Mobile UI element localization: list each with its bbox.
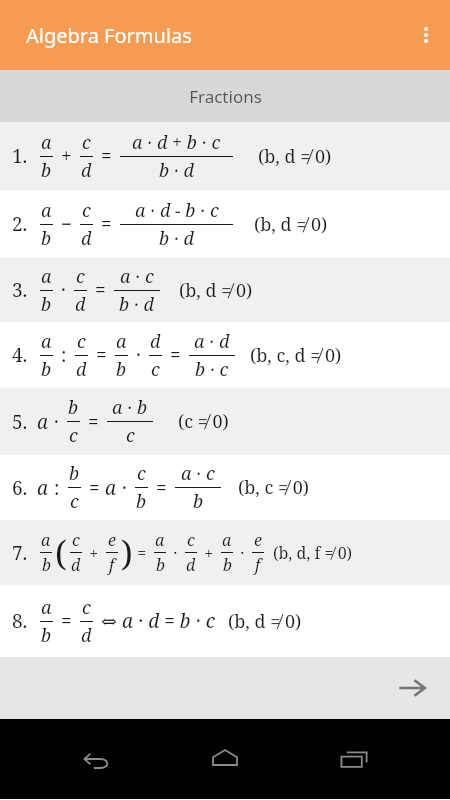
staticText: d — [81, 623, 92, 648]
staticText: = — [151, 475, 172, 501]
staticText: = — [83, 409, 104, 435]
staticText: a — [41, 264, 52, 289]
staticText: a · d − b · c — [135, 198, 219, 223]
staticText: b · c — [195, 357, 229, 382]
staticText: 2. — [12, 211, 28, 237]
staticText: Fractions — [189, 85, 262, 108]
staticText: · — [49, 409, 64, 435]
staticText: a — [41, 130, 52, 155]
staticText: b — [69, 461, 80, 486]
staticText: a · b — [112, 395, 148, 420]
staticText: c — [137, 461, 146, 486]
staticText: a · d + b · c — [132, 130, 221, 155]
staticText: : — [56, 342, 72, 368]
button[interactable]: 4. — [0, 322, 450, 388]
staticText: (b, d ≠ 0) — [228, 609, 302, 634]
staticText: c — [72, 529, 80, 551]
staticText: a — [37, 409, 49, 435]
staticText: − — [56, 211, 77, 237]
staticText: : — [49, 475, 65, 501]
button[interactable]: 3. — [0, 258, 450, 322]
staticText: 6. — [12, 475, 28, 501]
staticText: b — [41, 226, 52, 251]
staticText: b — [41, 292, 52, 317]
staticText: c — [187, 529, 195, 551]
staticText: · — [131, 342, 146, 368]
staticText: c — [70, 489, 79, 514]
button[interactable]: Back — [65, 727, 129, 791]
staticText: = — [133, 542, 151, 564]
staticText: b — [42, 554, 51, 576]
button[interactable]: 6. — [0, 455, 450, 520]
staticText: · — [117, 475, 132, 501]
button[interactable]: 2. — [0, 190, 450, 258]
button[interactable]: Next — [384, 660, 440, 716]
staticText: e — [254, 529, 262, 551]
staticText: d — [71, 554, 81, 576]
staticText: d — [81, 158, 92, 183]
staticText: + — [85, 542, 103, 564]
staticText: a — [41, 329, 52, 354]
staticText: a — [37, 475, 49, 501]
staticText: (b, d ≠ 0) — [254, 212, 328, 237]
staticText: 3. — [12, 277, 28, 303]
staticText: b — [41, 158, 52, 183]
staticText: (b, d ≠ 0) — [258, 144, 332, 169]
button[interactable]: 8. — [0, 585, 450, 657]
button[interactable]: 5. — [0, 388, 450, 455]
staticText: d — [186, 554, 196, 576]
staticText: c — [76, 264, 85, 289]
staticText: ⇔ — [96, 608, 122, 634]
staticText: ( — [55, 530, 67, 576]
staticText: c — [151, 357, 160, 382]
staticText: a · c — [181, 461, 215, 486]
staticText: (b, d, f ≠ 0) — [273, 542, 353, 564]
button[interactable]: 1. — [0, 122, 450, 190]
staticText: a — [116, 329, 127, 354]
staticText: c — [69, 423, 78, 448]
staticText: b · d — [159, 226, 195, 251]
staticText: c — [82, 130, 91, 155]
staticText: (c ≠ 0) — [178, 409, 229, 434]
staticText: = — [84, 475, 105, 501]
staticText: = — [96, 211, 117, 237]
staticText: a — [41, 595, 52, 620]
staticText: b — [156, 554, 165, 576]
staticText: Algebra Formulas — [26, 22, 192, 49]
staticText: b — [41, 357, 52, 382]
staticText: c — [82, 198, 91, 223]
staticText: b · d — [159, 158, 195, 183]
staticText: d — [75, 292, 86, 317]
button[interactable]: Recent apps — [322, 727, 386, 791]
button[interactable]: 7. — [0, 520, 450, 585]
staticText: 4. — [12, 342, 28, 368]
staticText: b — [193, 489, 204, 514]
staticText: + — [56, 143, 77, 169]
staticText: c — [82, 595, 91, 620]
staticText: 7. — [12, 540, 28, 566]
staticText: 5. — [12, 409, 28, 435]
staticText: = — [96, 143, 117, 169]
staticText: 8. — [12, 608, 28, 634]
staticText: e — [108, 529, 116, 551]
staticText: d — [150, 329, 161, 354]
staticText: b — [68, 395, 79, 420]
staticText: a — [155, 529, 165, 551]
staticText: (b, c ≠ 0) — [238, 475, 310, 500]
staticText: c — [77, 329, 86, 354]
staticText: a · d — [194, 329, 230, 354]
staticText: (b, c, d ≠ 0) — [250, 343, 342, 368]
staticText: b — [223, 554, 232, 576]
staticText: b · d — [119, 292, 155, 317]
button[interactable]: More options — [402, 11, 450, 59]
staticText: a — [41, 529, 51, 551]
staticText: d — [76, 357, 87, 382]
staticText: b — [136, 489, 147, 514]
staticText: · — [236, 542, 249, 564]
staticText: a · d = b · c — [122, 608, 216, 634]
staticText: = — [91, 342, 112, 368]
button[interactable]: Home — [193, 727, 257, 791]
staticText: ) — [121, 530, 133, 576]
staticText: a — [105, 475, 117, 501]
staticText: = — [56, 608, 77, 634]
